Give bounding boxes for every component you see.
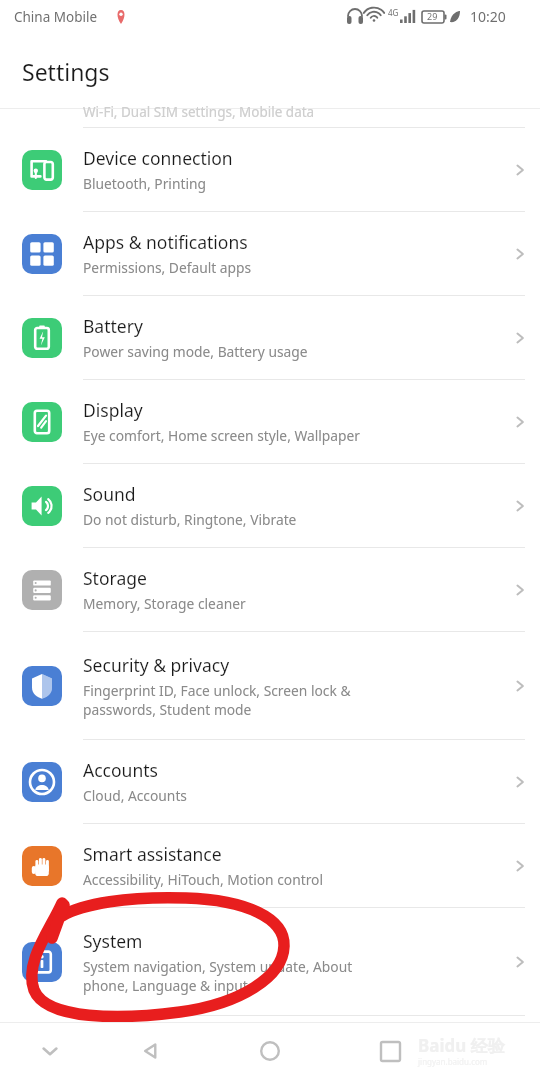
- staticText: Wi-Fi, Dual SIM settings, Mobile data: [83, 103, 315, 121]
- button[interactable]: Home: [242, 1032, 298, 1070]
- button[interactable]: Apps & notifications: [0, 212, 540, 295]
- staticText: Do not disturb, Ringtone, Vibrate: [83, 510, 297, 529]
- staticText: 29: [427, 10, 438, 22]
- staticText: System navigation, System update, About …: [83, 957, 353, 995]
- staticText: Fingerprint ID, Face unlock, Screen lock…: [83, 681, 351, 719]
- button[interactable]: Recent apps: [362, 1032, 418, 1070]
- button[interactable]: Storage: [0, 548, 540, 631]
- staticText: Battery: [83, 314, 143, 338]
- button[interactable]: System: [0, 908, 540, 1015]
- button[interactable]: Back: [122, 1032, 178, 1070]
- staticText: Settings: [22, 56, 110, 87]
- button[interactable]: Smart assistance: [0, 824, 540, 907]
- staticText: Accessibility, HiTouch, Motion control: [83, 870, 323, 889]
- staticText: jingyan.baidu.com: [418, 1056, 488, 1067]
- staticText: Cloud, Accounts: [83, 786, 187, 805]
- staticText: Bluetooth, Printing: [83, 174, 206, 193]
- button[interactable]: Sound: [0, 464, 540, 547]
- staticText: Sound: [83, 482, 136, 506]
- staticText: Memory, Storage cleaner: [83, 594, 246, 613]
- staticText: Apps & notifications: [83, 230, 248, 254]
- staticText: Storage: [83, 566, 147, 590]
- staticText: System: [83, 929, 143, 953]
- staticText: 4G: [388, 7, 399, 18]
- staticText: China Mobile: [14, 8, 98, 26]
- staticText: Security & privacy: [83, 653, 230, 677]
- button[interactable]: Device connection: [0, 128, 540, 211]
- staticText: Display: [83, 398, 143, 422]
- button[interactable]: Battery: [0, 296, 540, 379]
- button[interactable]: Display: [0, 380, 540, 463]
- staticText: Device connection: [83, 146, 233, 170]
- button[interactable]: Accounts: [0, 740, 540, 823]
- staticText: Smart assistance: [83, 842, 222, 866]
- button[interactable]: Hide: [22, 1034, 78, 1068]
- staticText: Accounts: [83, 758, 158, 782]
- staticText: Power saving mode, Battery usage: [83, 342, 308, 361]
- staticText: Baidu 经验: [418, 1034, 505, 1057]
- staticText: 10:20: [470, 7, 506, 26]
- staticText: Eye comfort, Home screen style, Wallpape…: [83, 426, 361, 445]
- button[interactable]: Security & privacy: [0, 632, 540, 739]
- staticText: Permissions, Default apps: [83, 258, 252, 277]
